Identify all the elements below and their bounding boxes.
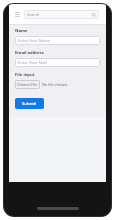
staticText: Enter Your Name (18, 38, 51, 43)
staticText: No file chosen (42, 82, 68, 87)
staticText: Submit (22, 101, 37, 107)
button[interactable]: Menu (14, 11, 20, 17)
button[interactable]: Enter Your Name (15, 36, 100, 45)
staticText: Choose File (17, 82, 38, 87)
button[interactable]: Enter Your Mail (15, 58, 100, 67)
button[interactable]: Choose File (15, 80, 100, 89)
staticText: Search (27, 12, 92, 17)
staticText: Name (15, 28, 28, 34)
staticText: Email address (15, 50, 44, 56)
button[interactable]: Search (24, 10, 99, 19)
button[interactable]: Submit (15, 98, 44, 109)
staticText: File input (15, 72, 35, 78)
staticText: Enter Your Mail (18, 60, 47, 65)
